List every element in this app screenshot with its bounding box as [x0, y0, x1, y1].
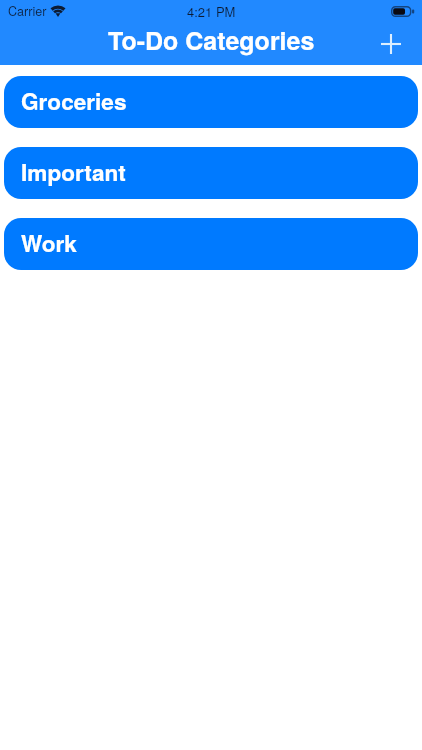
staticText: Groceries	[21, 85, 127, 117]
staticText: Work	[21, 227, 77, 259]
staticText: To-Do Categories	[108, 22, 315, 58]
other: Wi-Fi	[50, 5, 66, 17]
staticText: Important	[21, 156, 126, 188]
button[interactable]: Add category	[370, 23, 412, 65]
staticText: 4:21 PM	[187, 2, 236, 21]
staticText: Carrier	[8, 2, 47, 20]
button[interactable]: Work	[4, 218, 418, 270]
other: Battery	[391, 6, 415, 17]
button[interactable]: Important	[4, 147, 418, 199]
button[interactable]: Groceries	[4, 76, 418, 128]
